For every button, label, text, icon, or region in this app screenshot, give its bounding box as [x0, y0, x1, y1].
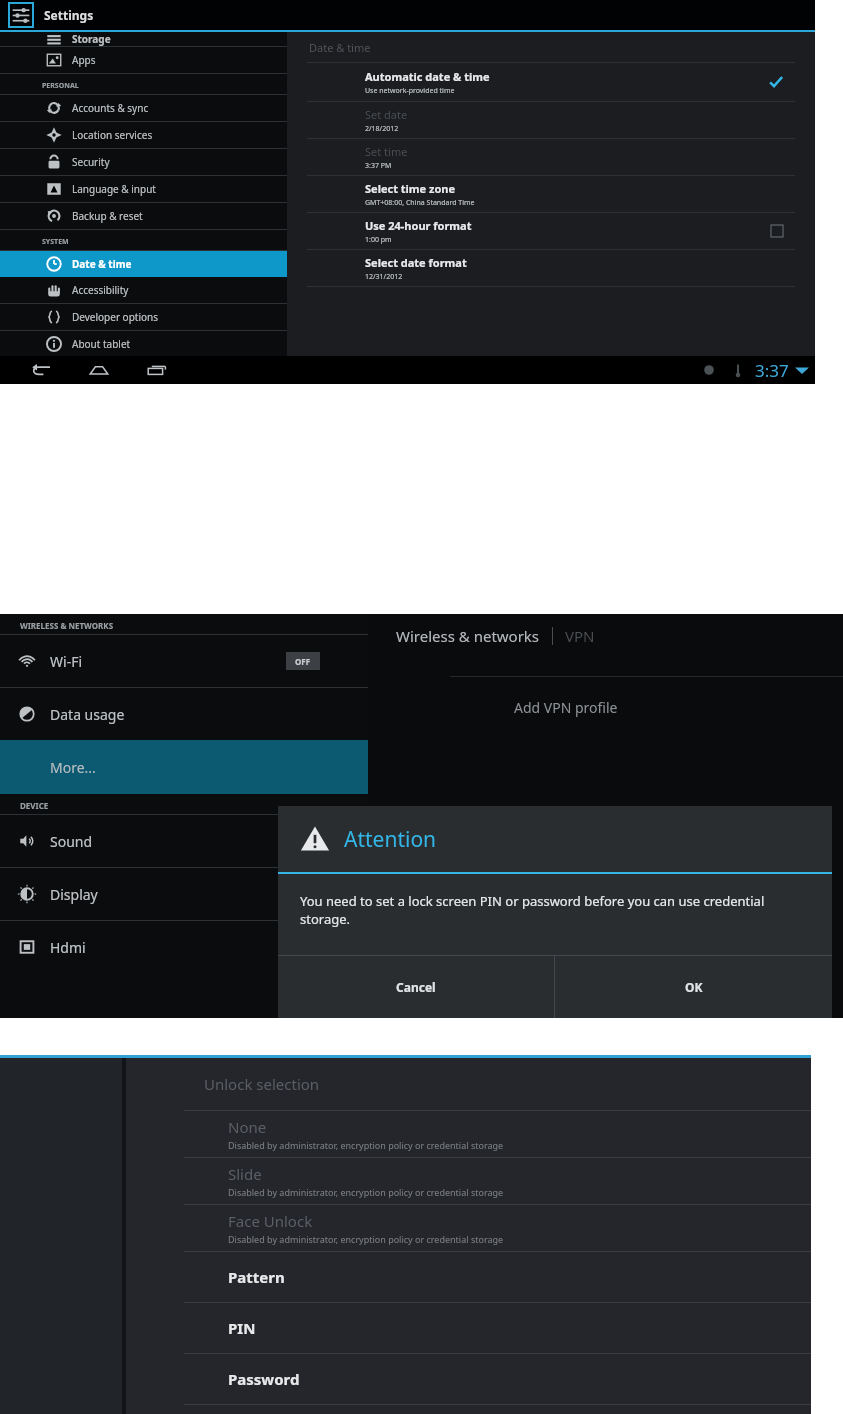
staticText: Settings	[44, 7, 94, 23]
staticText: DEVICE	[20, 800, 49, 811]
button[interactable]: Hdmi	[0, 921, 368, 973]
staticText: Developer options	[72, 310, 159, 324]
staticText: OFF	[295, 656, 311, 667]
staticText: Slide	[228, 1164, 262, 1184]
button[interactable]: Settings	[8, 2, 34, 28]
staticText: Unlock selection	[204, 1074, 320, 1094]
staticText: 1:00 pm	[365, 235, 392, 245]
staticText: Face Unlock	[228, 1211, 313, 1231]
staticText: Backup & reset	[72, 209, 143, 223]
button[interactable]: Cancel	[278, 956, 554, 1018]
staticText: None	[228, 1117, 267, 1137]
staticText: 2/18/2012	[365, 124, 399, 134]
button[interactable]: Backup & reset	[0, 203, 287, 229]
staticText: Date & time	[72, 257, 132, 271]
staticText: Hdmi	[50, 938, 86, 957]
button[interactable]: About tablet	[0, 331, 287, 356]
staticText: Select time zone	[365, 181, 456, 196]
button[interactable]: None	[126, 1111, 811, 1158]
staticText: GMT+08:00, China Standard Time	[365, 198, 475, 208]
staticText: About tablet	[72, 337, 131, 351]
button[interactable]: Set date	[287, 102, 815, 139]
staticText: Set time	[365, 144, 408, 159]
staticText: 12/31/2012	[365, 272, 403, 282]
button[interactable]: Face Unlock	[126, 1205, 811, 1252]
button[interactable]: Pattern	[126, 1252, 811, 1303]
button[interactable]: Slide	[126, 1158, 811, 1205]
button[interactable]: Recents	[144, 357, 170, 383]
button[interactable]: Storage	[0, 32, 287, 46]
button[interactable]: Add VPN profile	[514, 677, 843, 737]
staticText: Data usage	[50, 705, 125, 724]
staticText: Language & input	[72, 182, 156, 196]
button[interactable]: Accessibility	[0, 277, 287, 303]
staticText: PIN	[228, 1318, 256, 1338]
staticText: VPN	[565, 626, 595, 646]
staticText: Storage	[72, 32, 111, 46]
button[interactable]: Back	[28, 357, 54, 383]
staticText: Date & time	[309, 40, 371, 55]
staticText: Attention	[344, 825, 437, 854]
staticText: OK	[685, 979, 703, 995]
staticText: Location services	[72, 128, 153, 142]
button[interactable]: Developer options	[0, 304, 287, 330]
staticText: Sound	[50, 832, 93, 851]
button[interactable]: Date & time	[0, 251, 287, 277]
staticText: Cancel	[396, 979, 436, 995]
button[interactable]: Password	[126, 1354, 811, 1405]
button[interactable]: OK	[555, 956, 832, 1018]
staticText: Select date format	[365, 255, 467, 270]
staticText: Apps	[72, 53, 96, 67]
staticText: 3:37	[755, 359, 789, 382]
button[interactable]: Apps	[0, 47, 287, 73]
staticText: Automatic date & time	[365, 69, 490, 84]
button[interactable]: Security	[0, 149, 287, 175]
staticText: Display	[50, 885, 98, 904]
button[interactable]: Automatic date & time	[287, 63, 815, 102]
button[interactable]: Select time zone	[287, 176, 815, 213]
button[interactable]: Set time	[287, 139, 815, 176]
staticText: Wi-Fi	[50, 652, 83, 671]
button[interactable]: Accounts & sync	[0, 95, 287, 121]
staticText: Add VPN profile	[514, 698, 618, 717]
staticText: SYSTEM	[42, 237, 69, 247]
staticText: PERSONAL	[42, 81, 79, 91]
staticText: 3:37 PM	[365, 161, 392, 171]
staticText: Pattern	[228, 1267, 285, 1287]
button[interactable]: PIN	[126, 1303, 811, 1354]
staticText: Use network-provided time	[365, 86, 455, 96]
staticText: Wireless & networks	[396, 626, 540, 646]
button[interactable]: Display	[0, 868, 368, 920]
staticText: Accounts & sync	[72, 101, 149, 115]
staticText: Accessibility	[72, 283, 129, 297]
staticText: Set date	[365, 107, 408, 122]
button[interactable]: Home	[86, 357, 112, 383]
button[interactable]: Data usage	[0, 688, 368, 740]
staticText: Use 24-hour format	[365, 218, 472, 233]
staticText: Password	[228, 1369, 300, 1389]
staticText: WIRELESS & NETWORKS	[20, 620, 114, 631]
staticText: Disabled by administrator, encryption po…	[228, 1139, 504, 1151]
button[interactable]: Language & input	[0, 176, 287, 202]
button[interactable]: More...	[0, 740, 368, 794]
button[interactable]: Location services	[0, 122, 287, 148]
staticText: Disabled by administrator, encryption po…	[228, 1233, 504, 1245]
button[interactable]: Sound	[0, 815, 368, 867]
staticText: You need to set a lock screen PIN or pas…	[300, 892, 816, 928]
button[interactable]: Select date format	[287, 250, 815, 287]
button[interactable]: Use 24-hour format	[287, 213, 815, 250]
staticText: More...	[50, 758, 96, 777]
staticText: Security	[72, 155, 110, 169]
button[interactable]: Wi-Fi	[0, 635, 368, 687]
staticText: Disabled by administrator, encryption po…	[228, 1186, 504, 1198]
